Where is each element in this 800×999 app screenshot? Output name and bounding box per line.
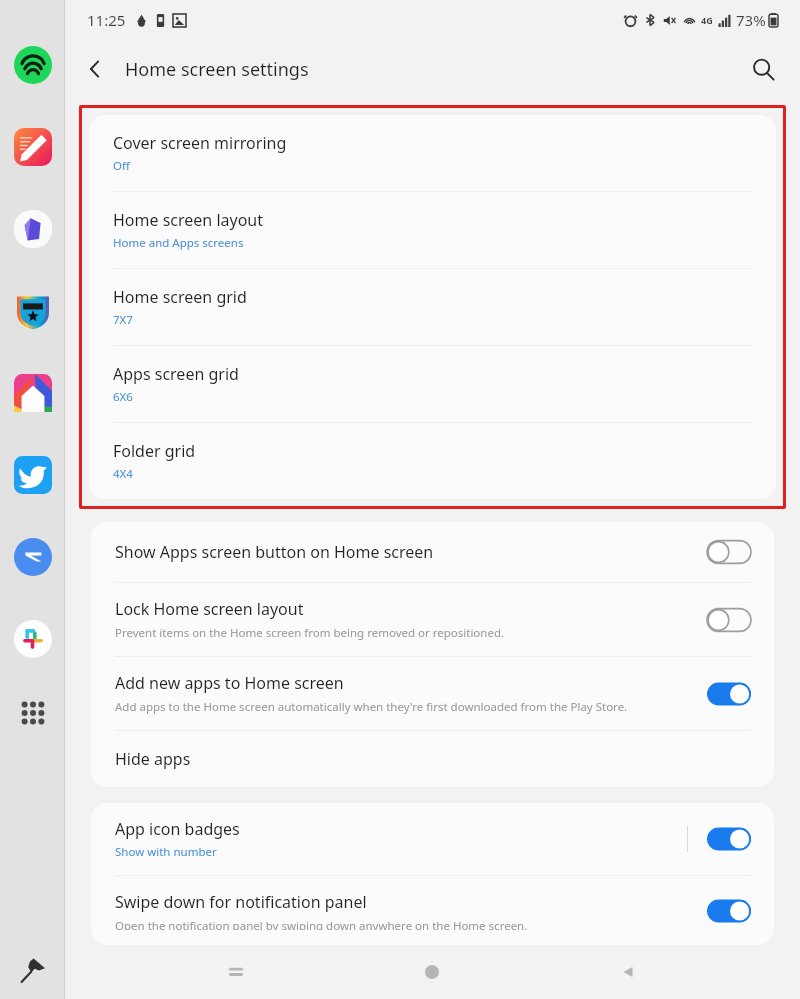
- button[interactable]: Search: [740, 46, 786, 92]
- staticText: Home and Apps screens: [113, 235, 244, 251]
- button[interactable]: Recents: [212, 948, 260, 996]
- button[interactable]: Folder grid: [89, 423, 776, 499]
- button[interactable]: Swipe down for notification panel: [91, 876, 774, 945]
- button[interactable]: Home: [408, 948, 456, 996]
- button[interactable]: Hide apps: [91, 731, 774, 787]
- other: Pin taskbar: [18, 955, 48, 985]
- staticText: Lock Home screen layout: [115, 598, 304, 620]
- staticText: 11:25: [87, 10, 126, 30]
- staticText: Show with number: [115, 844, 217, 860]
- staticText: Cover screen mirroring: [113, 132, 287, 154]
- staticText: 4X4: [113, 466, 133, 482]
- staticText: 4G: [701, 14, 713, 26]
- staticText: 6X6: [113, 389, 133, 405]
- staticText: Prevent items on the Home screen from be…: [115, 625, 505, 641]
- button[interactable]: On: [704, 824, 754, 854]
- staticText: Home screen settings: [125, 57, 309, 82]
- button[interactable]: On: [704, 679, 754, 709]
- staticText: Open the notification panel by swiping d…: [115, 918, 528, 930]
- button[interactable]: On: [704, 896, 754, 926]
- staticText: Apps screen grid: [113, 363, 239, 385]
- button[interactable]: Off: [704, 537, 754, 567]
- button[interactable]: Add new apps to Home screen: [91, 657, 774, 730]
- staticText: 7X7: [113, 312, 133, 328]
- button[interactable]: Off: [704, 605, 754, 635]
- staticText: Swipe down for notification panel: [115, 891, 367, 913]
- staticText: Off: [113, 158, 130, 174]
- button[interactable]: Cover screen mirroring: [89, 115, 776, 191]
- button[interactable]: Back: [604, 948, 652, 996]
- staticText: Add new apps to Home screen: [115, 672, 344, 694]
- staticText: Home screen layout: [113, 209, 264, 231]
- staticText: Show Apps screen button on Home screen: [115, 541, 434, 563]
- staticText: Hide apps: [115, 748, 191, 770]
- other: Apps: [18, 698, 48, 728]
- button[interactable]: Navigate up: [73, 47, 117, 91]
- staticText: App icon badges: [115, 818, 240, 840]
- button[interactable]: Show Apps screen button on Home screen: [91, 522, 774, 582]
- button[interactable]: Apps screen grid: [89, 346, 776, 422]
- button[interactable]: Home screen grid: [89, 269, 776, 345]
- button[interactable]: Lock Home screen layout: [91, 583, 774, 656]
- staticText: Home screen grid: [113, 286, 247, 308]
- button[interactable]: Home screen layout: [89, 192, 776, 268]
- button[interactable]: App icon badges: [91, 803, 774, 875]
- staticText: Folder grid: [113, 440, 196, 462]
- staticText: 73%: [736, 10, 766, 30]
- staticText: Add apps to the Home screen automaticall…: [115, 699, 628, 715]
